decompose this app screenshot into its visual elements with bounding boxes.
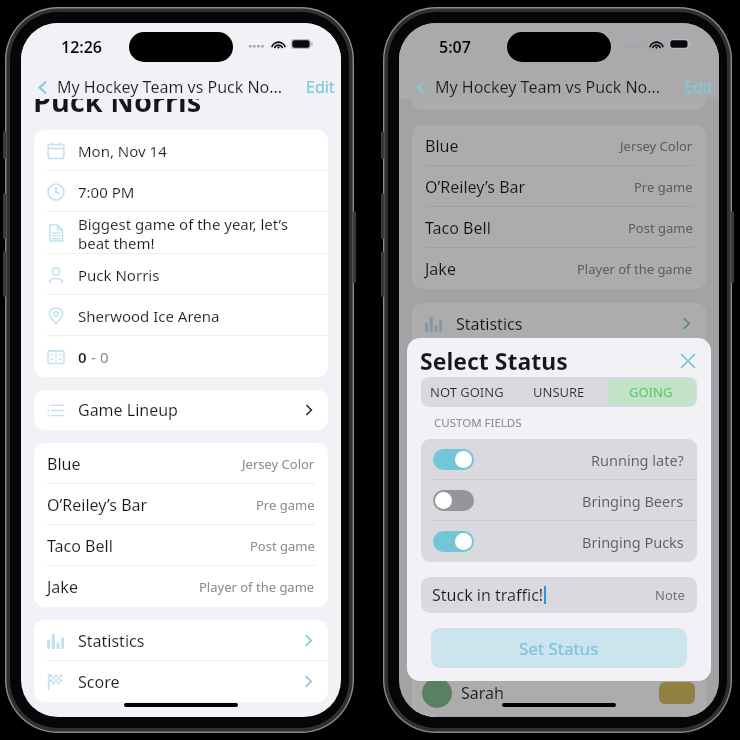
staticText: Sarah — [461, 682, 504, 704]
staticText: Jersey Color — [242, 455, 315, 473]
staticText: O’Reiley’s Bar — [47, 494, 148, 516]
button[interactable]: Sherwood Ice Arena — [34, 295, 328, 336]
button[interactable]: 0 — [34, 336, 328, 377]
button[interactable]: Close — [675, 348, 701, 374]
staticText: UNSURE — [533, 383, 585, 401]
button[interactable]: Stuck in traffic! — [421, 577, 697, 613]
button[interactable]: Biggest game of the year, let’s beat the… — [34, 212, 328, 254]
button[interactable]: Score — [412, 344, 706, 385]
button[interactable]: O’Reiley’s Bar — [412, 166, 706, 207]
staticText: 7:00 PM — [78, 182, 135, 202]
button[interactable]: UNSURE — [515, 379, 603, 405]
staticText: 12:26 — [61, 36, 103, 58]
staticText: My Hockey Team vs Puck No... — [57, 76, 283, 98]
staticText: Mon, Nov 14 — [78, 141, 167, 161]
button[interactable]: Mon, Nov 14 — [34, 130, 328, 171]
staticText: Edit — [684, 76, 713, 98]
button[interactable]: GOING — [607, 379, 695, 405]
staticText: Taco Bell — [47, 535, 113, 557]
staticText: GOING — [629, 383, 673, 401]
staticText: Pre game — [634, 178, 693, 196]
staticText: Bringing Pucks — [582, 532, 684, 552]
button[interactable]: Game Lineup — [34, 390, 328, 430]
staticText: Post game — [628, 219, 693, 237]
staticText: Blue — [425, 135, 459, 157]
staticText: Jake — [47, 576, 78, 598]
staticText: Biggest game of the year, let’s beat the… — [78, 214, 315, 253]
staticText: Jersey Color — [620, 137, 693, 155]
staticText: Player of the game — [577, 260, 693, 278]
button[interactable]: 7:00 PM — [34, 171, 328, 212]
button[interactable]: Blue — [412, 125, 706, 166]
staticText: Statistics — [78, 630, 145, 652]
button[interactable]: Back — [32, 77, 52, 97]
staticText: Taco Bell — [425, 217, 491, 239]
button[interactable]: Taco Bell — [412, 207, 706, 248]
button[interactable]: O’Reiley’s Bar — [34, 484, 328, 525]
staticText: Score — [456, 354, 498, 376]
button[interactable]: Back — [410, 77, 430, 97]
staticText: 5:07 — [439, 36, 471, 58]
staticText: Set Status — [519, 637, 599, 660]
staticText: Game Lineup — [78, 399, 178, 421]
staticText: Running late? — [591, 450, 684, 470]
button[interactable]: Edit — [684, 76, 713, 98]
button[interactable]: Jake — [34, 566, 328, 607]
button[interactable]: Bringing Pucks — [421, 521, 697, 562]
staticText: Puck Norris — [33, 81, 202, 120]
button[interactable]: Running late? — [421, 439, 697, 480]
button[interactable]: Score — [34, 661, 328, 702]
button[interactable]: Set Status — [431, 628, 687, 668]
button[interactable]: Puck Norris — [34, 254, 328, 295]
staticText: Stuck in traffic! — [432, 584, 544, 606]
staticText: Jake — [425, 258, 456, 280]
button[interactable]: Blue — [34, 443, 328, 484]
button[interactable]: Taco Bell — [34, 525, 328, 566]
staticText: Select Status — [420, 345, 568, 376]
staticText: Player of the game — [199, 578, 315, 596]
staticText: Puck Norris — [78, 265, 160, 285]
staticText: 0 — [100, 347, 109, 367]
staticText: Bringing Beers — [582, 491, 684, 511]
staticText: Score — [78, 671, 120, 693]
staticText: CUSTOM FIELDS — [434, 415, 522, 431]
staticText: My Hockey Team vs Puck No... — [435, 76, 661, 98]
staticText: 0 — [78, 347, 87, 367]
button[interactable]: Edit — [306, 76, 335, 98]
staticText: Pre game — [256, 496, 315, 514]
staticText: Statistics — [456, 313, 523, 335]
staticText: Edit — [306, 76, 335, 98]
button[interactable]: Jake — [412, 248, 706, 289]
staticText: NOT GOING — [430, 383, 504, 401]
button[interactable]: Statistics — [34, 620, 328, 661]
staticText: - — [87, 347, 100, 367]
button[interactable]: Statistics — [412, 303, 706, 344]
button[interactable]: Bringing Beers — [421, 480, 697, 521]
staticText: Post game — [250, 537, 315, 555]
staticText: Blue — [47, 453, 81, 475]
button[interactable]: NOT GOING — [423, 379, 511, 405]
staticText: Note — [655, 586, 685, 604]
staticText: Sherwood Ice Arena — [78, 306, 220, 326]
staticText: O’Reiley’s Bar — [425, 176, 526, 198]
